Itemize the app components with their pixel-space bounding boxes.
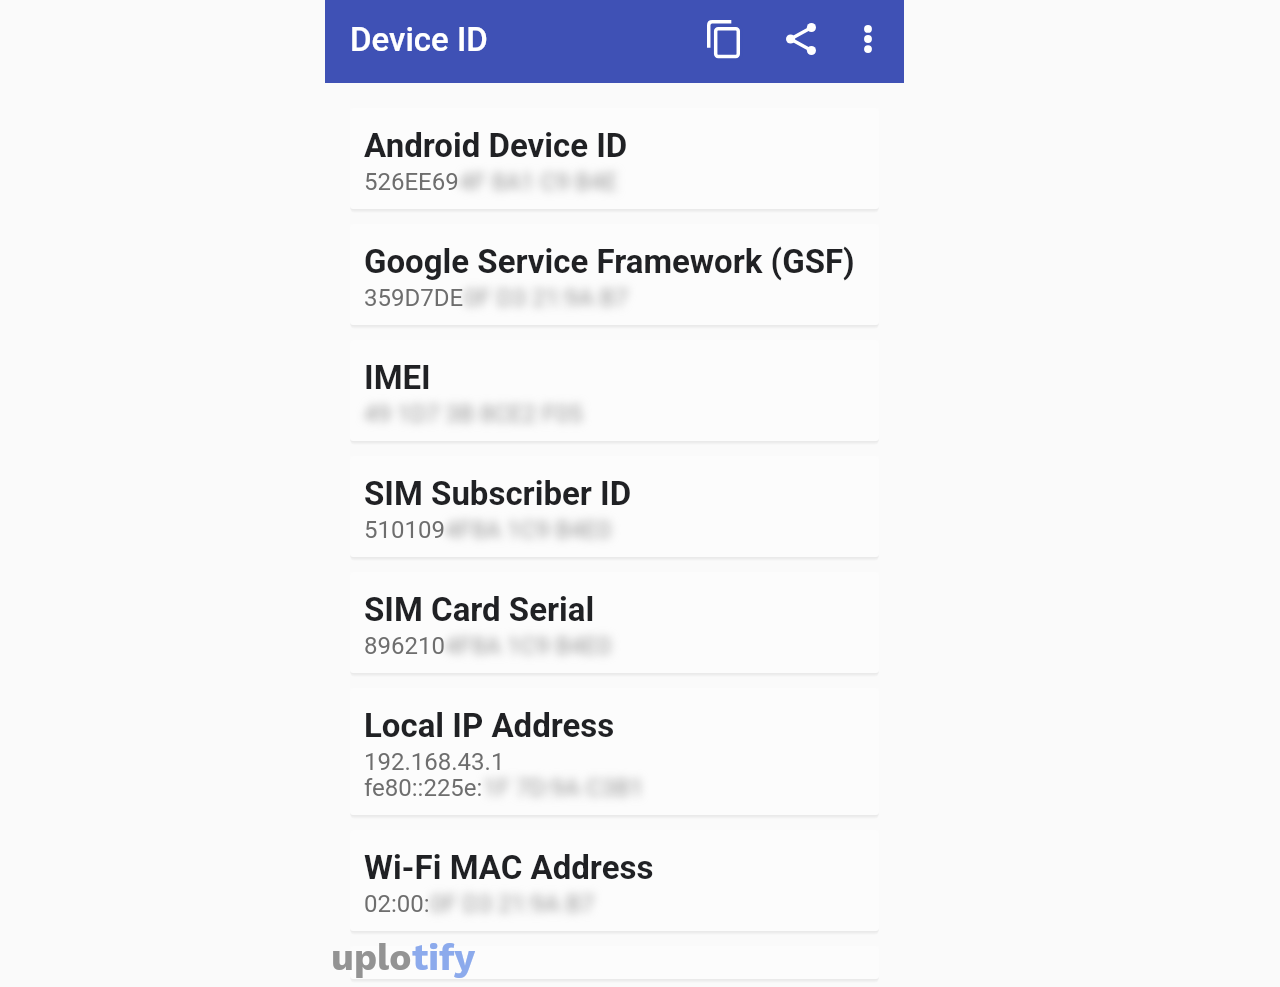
staticText: 4F 8A1 C9 B4E	[459, 168, 618, 194]
staticText: 510109	[364, 516, 445, 542]
button[interactable]: Local IP Address	[350, 688, 879, 815]
staticText: 02:00:	[364, 890, 430, 916]
button[interactable]: Android Device ID	[350, 108, 879, 209]
button[interactable]	[350, 946, 879, 979]
button[interactable]: Copy	[685, 1, 761, 76]
button[interactable]: Wi-Fi MAC Address	[350, 830, 879, 931]
staticText: fe80::225e:	[364, 774, 483, 800]
button[interactable]: Share	[763, 1, 839, 76]
staticText: SIM Card Serial	[364, 590, 595, 629]
staticText: 359D7DE	[364, 284, 464, 310]
staticText: SIM Subscriber ID	[364, 474, 632, 513]
staticText: tify	[412, 936, 476, 979]
staticText: Android Device ID	[364, 126, 628, 165]
staticText: Wi-Fi MAC Address	[364, 848, 654, 887]
staticText: 896210	[364, 632, 445, 658]
staticText: IMEI	[364, 358, 431, 397]
staticText: 1F 7D:9A C3B1	[483, 774, 644, 800]
button[interactable]: IMEI	[350, 340, 879, 441]
staticText: uplo	[331, 936, 412, 979]
staticText: Local IP Address	[364, 706, 615, 745]
staticText: Device ID	[350, 20, 488, 59]
button[interactable]: Google Service Framework (GSF)	[350, 224, 879, 325]
staticText: 4F8A 1C9 B4E0	[445, 516, 611, 542]
button[interactable]: SIM Card Serial	[350, 572, 879, 673]
staticText: 0F D3 21:9A B7	[464, 284, 629, 310]
button[interactable]: SIM Subscriber ID	[350, 456, 879, 557]
button[interactable]: More options	[830, 1, 906, 76]
staticText: 4F8A 1C9 B4E0	[445, 632, 611, 658]
staticText: 526EE69	[364, 168, 459, 194]
staticText: 192.168.43.1	[364, 748, 505, 774]
staticText: 0F D3 21:9A B7	[430, 890, 595, 916]
staticText: 49 1D7 3B 8CE2 F05	[364, 400, 583, 426]
staticText: Google Service Framework (GSF)	[364, 242, 855, 281]
